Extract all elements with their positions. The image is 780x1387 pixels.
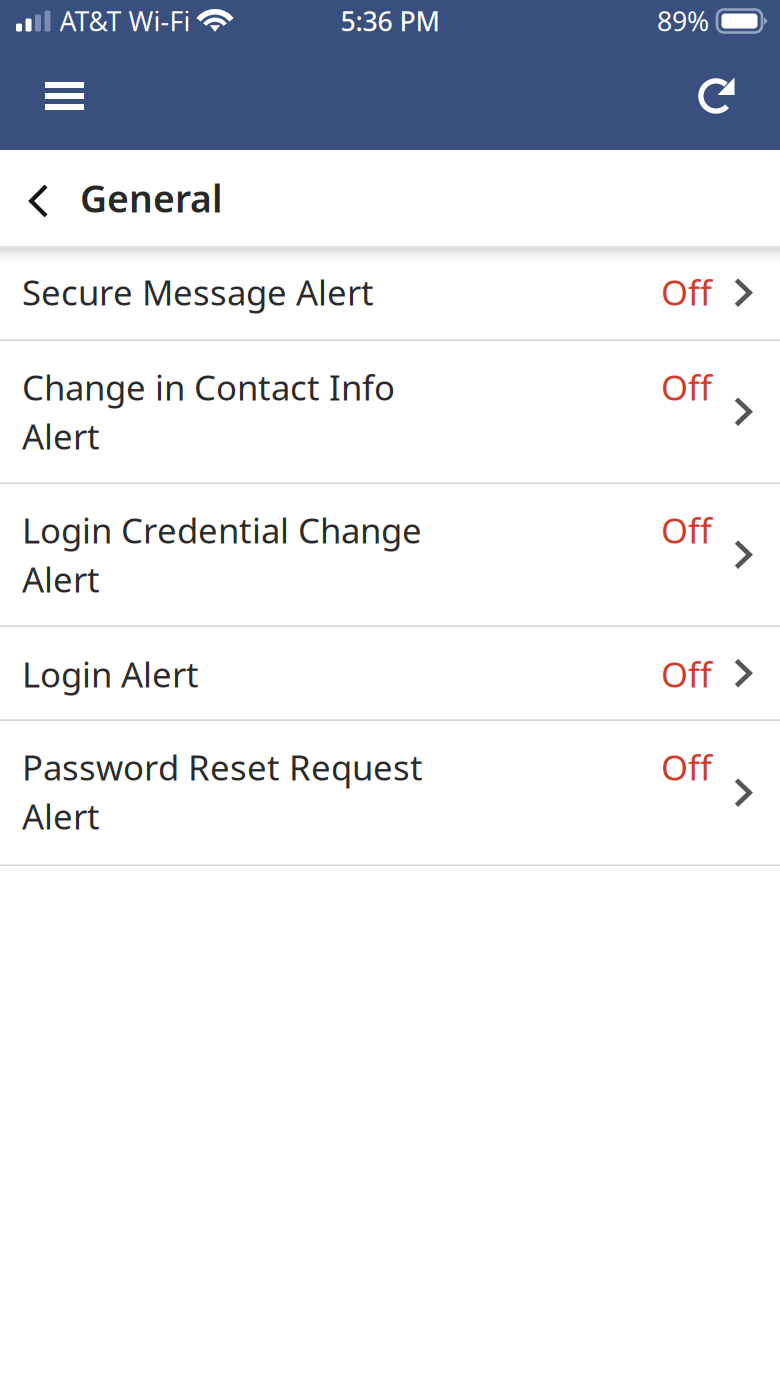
- staticText: 5:36 PM: [340, 3, 439, 39]
- button[interactable]: Password Reset Request: [0, 721, 780, 866]
- staticText: Alert: [22, 793, 100, 839]
- staticText: Change in Contact Info: [22, 364, 395, 410]
- staticText: Off: [661, 744, 712, 790]
- staticText: 89%: [657, 3, 709, 39]
- button[interactable]: Menu: [31, 68, 98, 124]
- button[interactable]: Back: [0, 163, 80, 233]
- button[interactable]: Change in Contact Info: [0, 341, 780, 484]
- staticText: Alert: [22, 413, 100, 459]
- staticText: Login Alert: [22, 651, 199, 697]
- staticText: Secure Message Alert: [22, 269, 374, 315]
- staticText: Login Credential Change: [22, 507, 422, 553]
- staticText: General: [80, 173, 223, 223]
- staticText: Off: [661, 269, 712, 315]
- staticText: Off: [661, 364, 712, 410]
- staticText: Off: [661, 507, 712, 553]
- button[interactable]: Login Credential Change: [0, 484, 780, 627]
- staticText: Alert: [22, 556, 100, 602]
- staticText: Password Reset Request: [22, 744, 423, 790]
- button[interactable]: Secure Message Alert: [0, 246, 780, 341]
- staticText: AT&T Wi-Fi: [59, 3, 190, 39]
- staticText: Off: [661, 651, 712, 697]
- button[interactable]: Login Alert: [0, 627, 780, 721]
- button[interactable]: Refresh: [684, 63, 749, 128]
